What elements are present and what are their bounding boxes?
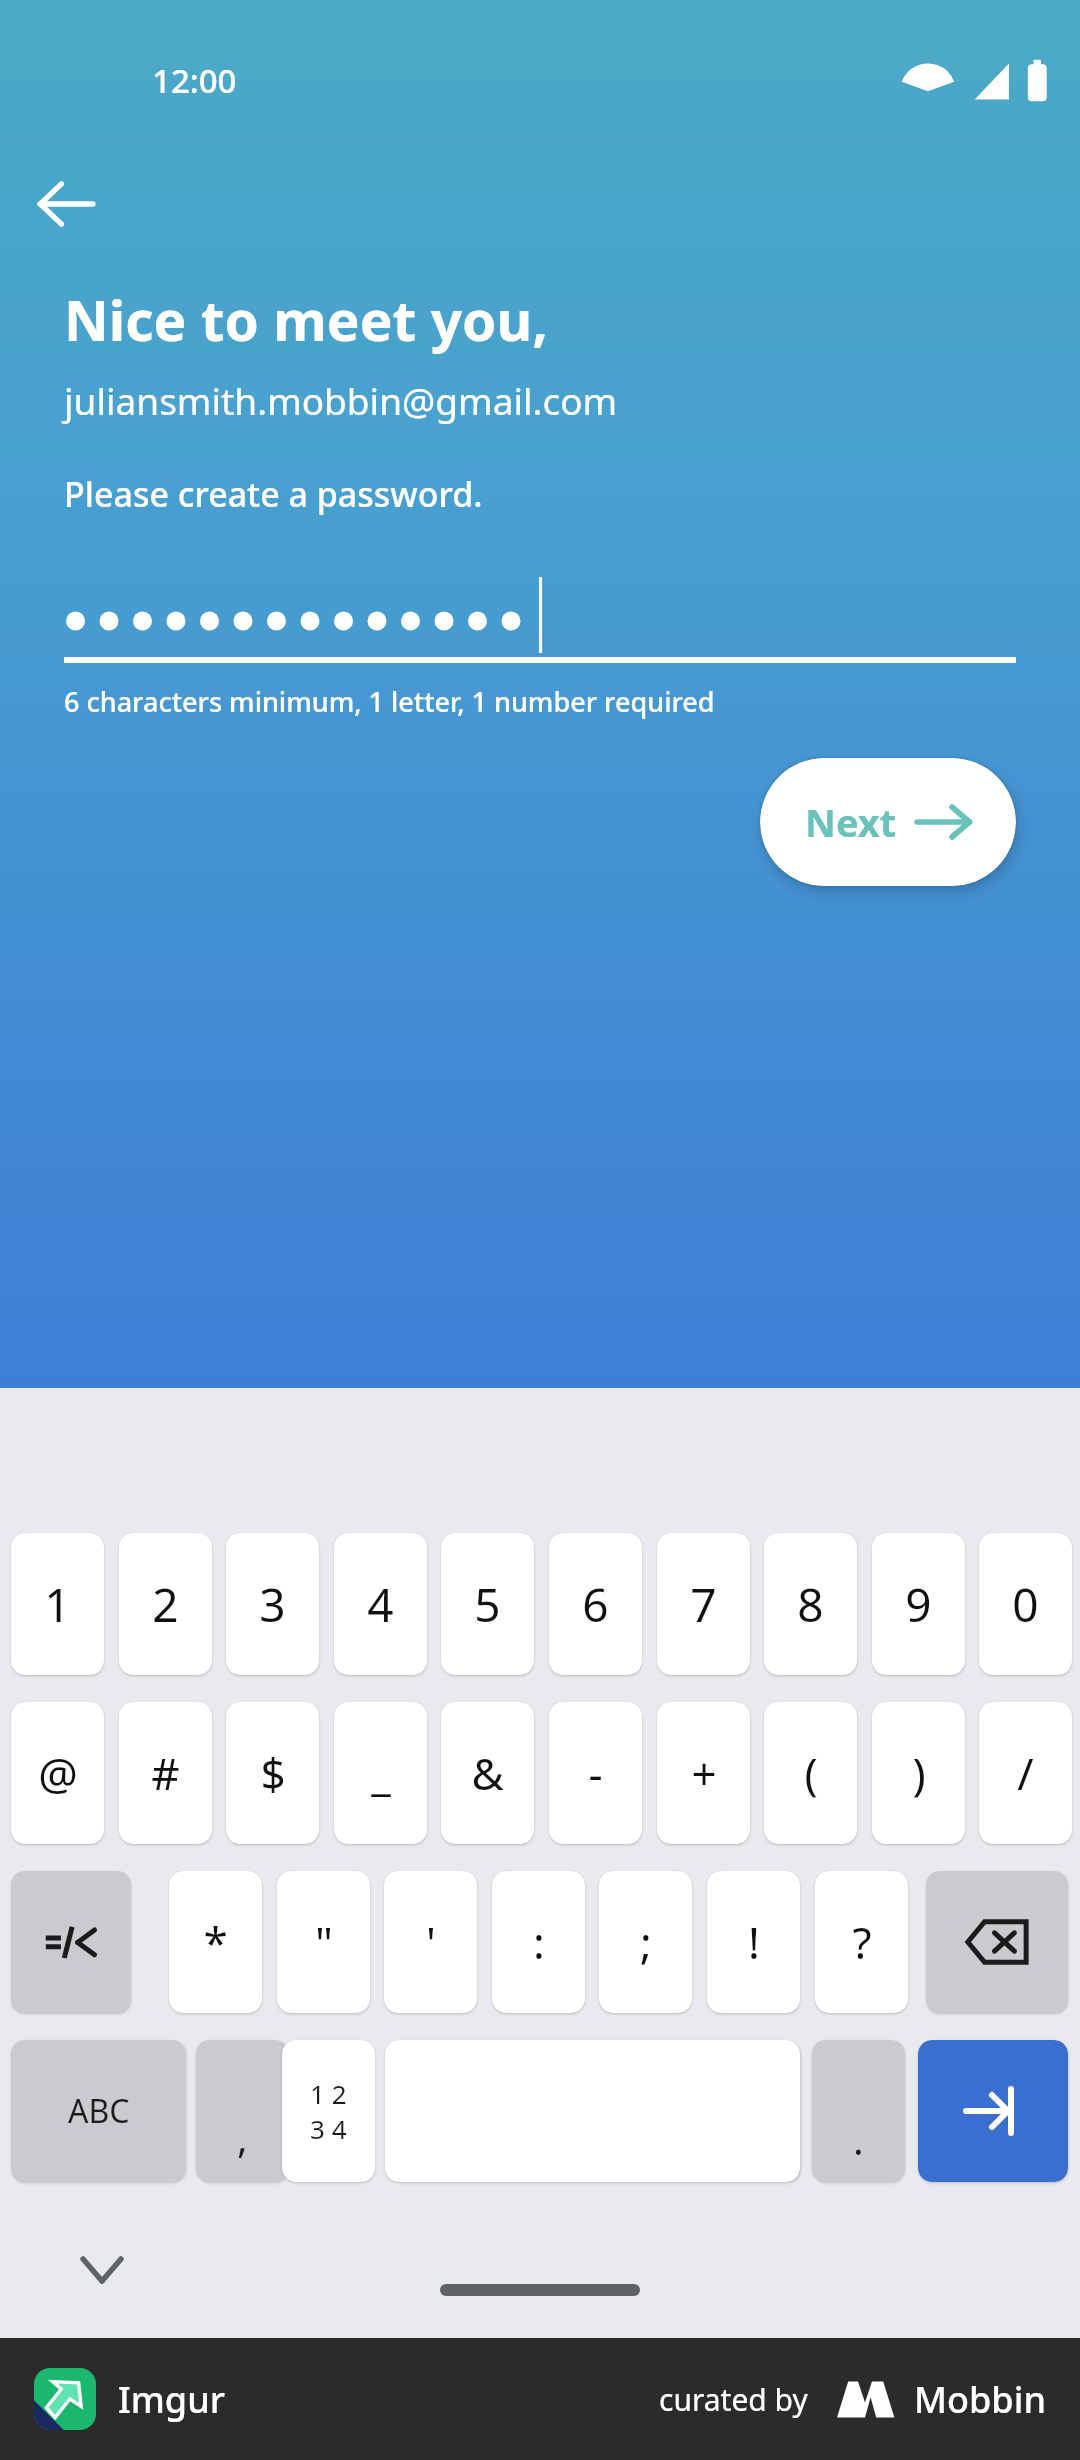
staticText: Imgur [118, 2375, 225, 2424]
staticText: ! [748, 1912, 760, 1972]
staticText: 2 [152, 1573, 179, 1636]
staticText: 5 [474, 1573, 501, 1636]
staticText: 6 [582, 1573, 609, 1636]
staticText: + [691, 1743, 717, 1803]
button[interactable]: 0 [979, 1533, 1072, 1675]
staticText: , [237, 2110, 248, 2164]
staticText: 1 [44, 1573, 71, 1636]
staticText: . [853, 2112, 864, 2166]
button[interactable]: _ [334, 1702, 427, 1844]
button[interactable]: ) [872, 1702, 965, 1844]
staticText: " [315, 1912, 333, 1972]
button[interactable]: , [196, 2040, 289, 2182]
staticText: @ [38, 1743, 78, 1803]
staticText: ) [912, 1743, 926, 1803]
button[interactable] [918, 2040, 1068, 2182]
staticText: ' [426, 1912, 436, 1972]
button[interactable] [926, 1871, 1068, 2013]
staticText: 9 [905, 1573, 932, 1636]
staticText: Nice to meet you, [64, 282, 548, 357]
button[interactable]: & [441, 1702, 534, 1844]
button[interactable]: " [277, 1871, 370, 2013]
button[interactable]: Next [760, 758, 1016, 886]
staticText: 7 [690, 1573, 717, 1636]
button[interactable]: 4 [334, 1533, 427, 1675]
button[interactable]: ; [599, 1871, 692, 2013]
staticText: juliansmith.mobbin@gmail.com [64, 375, 618, 425]
button[interactable]: 3 [226, 1533, 319, 1675]
button[interactable]: 1 [11, 1533, 104, 1675]
staticText: 8 [797, 1573, 824, 1636]
staticText: 3 [259, 1573, 286, 1636]
button[interactable]: + [657, 1702, 750, 1844]
button[interactable]: ABC [11, 2040, 186, 2182]
button[interactable]: # [119, 1702, 212, 1844]
button[interactable]: ! [707, 1871, 800, 2013]
staticText: Please create a password. [64, 471, 483, 517]
button[interactable]: 1 2 [282, 2040, 375, 2182]
button[interactable]: Hide keyboard [62, 2230, 142, 2310]
staticText: 3 4 [310, 2111, 347, 2146]
button[interactable] [11, 1871, 131, 2013]
button[interactable]: ( [764, 1702, 857, 1844]
button[interactable]: : [492, 1871, 585, 2013]
staticText: ; [640, 1912, 652, 1972]
button[interactable]: 8 [764, 1533, 857, 1675]
button[interactable]: 6 [549, 1533, 642, 1675]
button[interactable]: 5 [441, 1533, 534, 1675]
staticText: ABC [68, 2089, 130, 2133]
button[interactable]: . [812, 2040, 905, 2182]
staticText: 1 2 [310, 2076, 347, 2111]
staticText: # [151, 1743, 180, 1803]
staticText: _ [371, 1743, 391, 1803]
button[interactable]: 7 [657, 1533, 750, 1675]
staticText: ( [804, 1743, 818, 1803]
staticText: $ [260, 1743, 286, 1803]
staticText: 4 [367, 1573, 394, 1636]
staticText: 12:00 [152, 58, 237, 103]
button[interactable]: Back [20, 158, 112, 250]
button[interactable]: * [169, 1871, 262, 2013]
button[interactable]: 9 [872, 1533, 965, 1675]
staticText: 6 characters minimum, 1 letter, 1 number… [64, 683, 715, 720]
staticText: Mobbin [914, 2375, 1046, 2424]
button[interactable]: - [549, 1702, 642, 1844]
button[interactable]: @ [11, 1702, 104, 1844]
staticText: & [471, 1743, 504, 1803]
button[interactable]: / [979, 1702, 1072, 1844]
staticText: Next [805, 796, 897, 848]
staticText: ? [852, 1912, 872, 1972]
button[interactable]: 2 [119, 1533, 212, 1675]
staticText: * [203, 1912, 228, 1972]
staticText: : [533, 1912, 545, 1972]
button[interactable]: ? [815, 1871, 908, 2013]
staticText: 0 [1012, 1573, 1039, 1636]
button[interactable]: $ [226, 1702, 319, 1844]
staticText: / [1017, 1743, 1034, 1803]
staticText: curated by [659, 2379, 808, 2420]
staticText: - [588, 1743, 603, 1803]
button[interactable]: ' [384, 1871, 477, 2013]
button[interactable] [64, 561, 1016, 661]
